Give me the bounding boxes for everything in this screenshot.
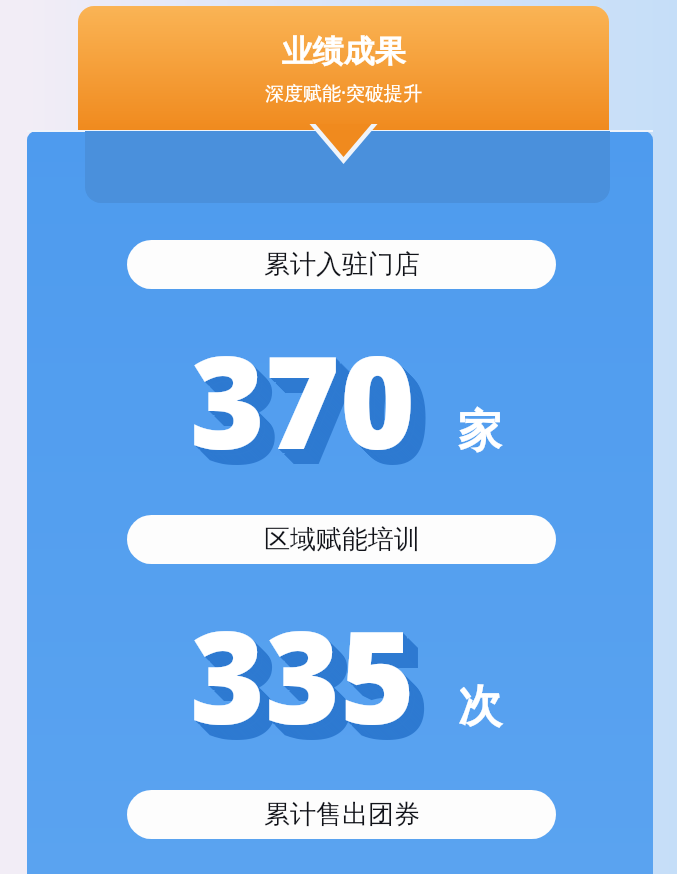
staticText: 335 [202, 599, 428, 773]
staticText: 335 [192, 589, 418, 763]
staticText: 370 [196, 318, 422, 492]
staticText: 335 [197, 594, 423, 768]
staticText: 370 [190, 312, 416, 486]
button[interactable]: 累计入驻门店 [127, 240, 556, 289]
staticText: 335 [203, 600, 429, 774]
staticText: 家 [458, 404, 502, 459]
staticText: 累计售出团券 [264, 798, 420, 831]
staticText: 335 [204, 601, 430, 775]
staticText: 335 [198, 595, 424, 769]
staticText: 370 [201, 323, 427, 497]
staticText: 335 [191, 588, 417, 762]
button[interactable]: 区域赋能培训 [127, 515, 556, 564]
staticText: 累计入驻门店 [264, 248, 420, 281]
staticText: 370 [204, 326, 430, 500]
staticText: 370 [197, 319, 423, 493]
staticText: 370 [205, 327, 431, 501]
staticText: 335 [200, 597, 426, 771]
staticText: 335 [194, 591, 420, 765]
other: 业绩成果 深度赋能·突破提升 [78, 6, 609, 130]
staticText: 深度赋能·突破提升 [78, 80, 609, 106]
staticText: 370 [202, 324, 428, 498]
staticText: 370 [203, 325, 429, 499]
button[interactable]: 累计售出团券 [127, 790, 556, 839]
staticText: 370 [191, 313, 417, 487]
staticText: 370 [192, 314, 418, 488]
staticText: 335 [201, 598, 427, 772]
staticText: 业绩成果 [78, 32, 609, 71]
staticText: 335 [196, 593, 422, 767]
staticText: 335 [199, 596, 425, 770]
staticText: 370 [200, 322, 426, 496]
staticText: 区域赋能培训 [264, 523, 420, 556]
staticText: 次 [458, 679, 502, 734]
staticText: 370 [193, 315, 419, 489]
staticText: 335 [190, 587, 416, 761]
staticText: 370 [194, 316, 420, 490]
staticText: 335 [193, 590, 419, 764]
staticText: 335 [205, 602, 431, 776]
staticText: 370 [199, 321, 425, 495]
staticText: 370 [198, 320, 424, 494]
